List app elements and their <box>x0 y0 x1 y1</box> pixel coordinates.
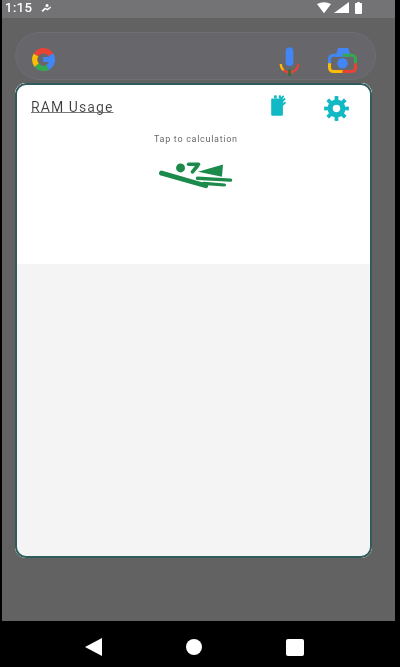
other: Google Lens <box>328 48 357 73</box>
button[interactable]: Calculate RAM usage <box>159 158 233 192</box>
other: Google <box>32 48 55 71</box>
staticText: Tap to calculation <box>154 134 238 145</box>
button[interactable]: RAM Usage <box>27 94 118 120</box>
staticText: 1:15 <box>5 0 33 15</box>
other: Voice search <box>280 46 299 76</box>
button[interactable]: Clean <box>264 91 292 119</box>
button[interactable]: Recents <box>274 626 316 667</box>
button[interactable]: Settings <box>321 93 351 123</box>
button[interactable]: Google <box>15 32 376 80</box>
staticText: RAM Usage <box>31 99 114 115</box>
button[interactable]: Home <box>173 626 215 667</box>
button[interactable]: Back <box>72 626 114 667</box>
